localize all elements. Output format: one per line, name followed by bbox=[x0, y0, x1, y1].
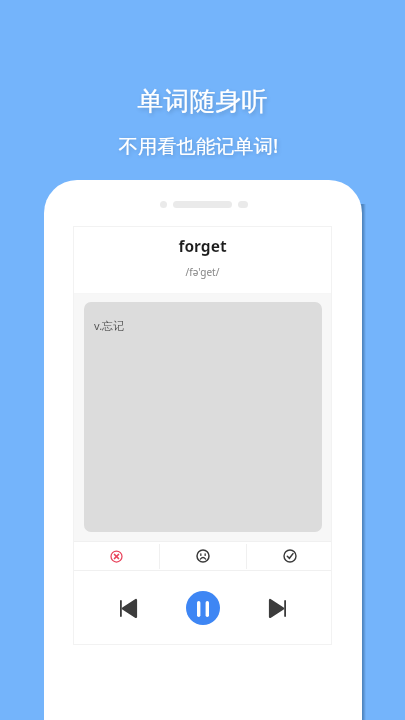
staticText: 单词随身听 bbox=[0, 85, 405, 118]
staticText: forget bbox=[73, 235, 332, 256]
staticText: v.忘记 bbox=[94, 318, 125, 333]
button[interactable]: Previous bbox=[108, 588, 148, 628]
staticText: /fə'get/ bbox=[73, 265, 332, 279]
button[interactable]: Pause bbox=[186, 591, 220, 625]
staticText: 不用看也能记单词! bbox=[0, 132, 401, 158]
button[interactable]: Next bbox=[258, 588, 298, 628]
button[interactable]: Know bbox=[247, 542, 332, 570]
button[interactable]: Forgot bbox=[73, 542, 159, 570]
button[interactable]: Vague bbox=[160, 542, 246, 570]
